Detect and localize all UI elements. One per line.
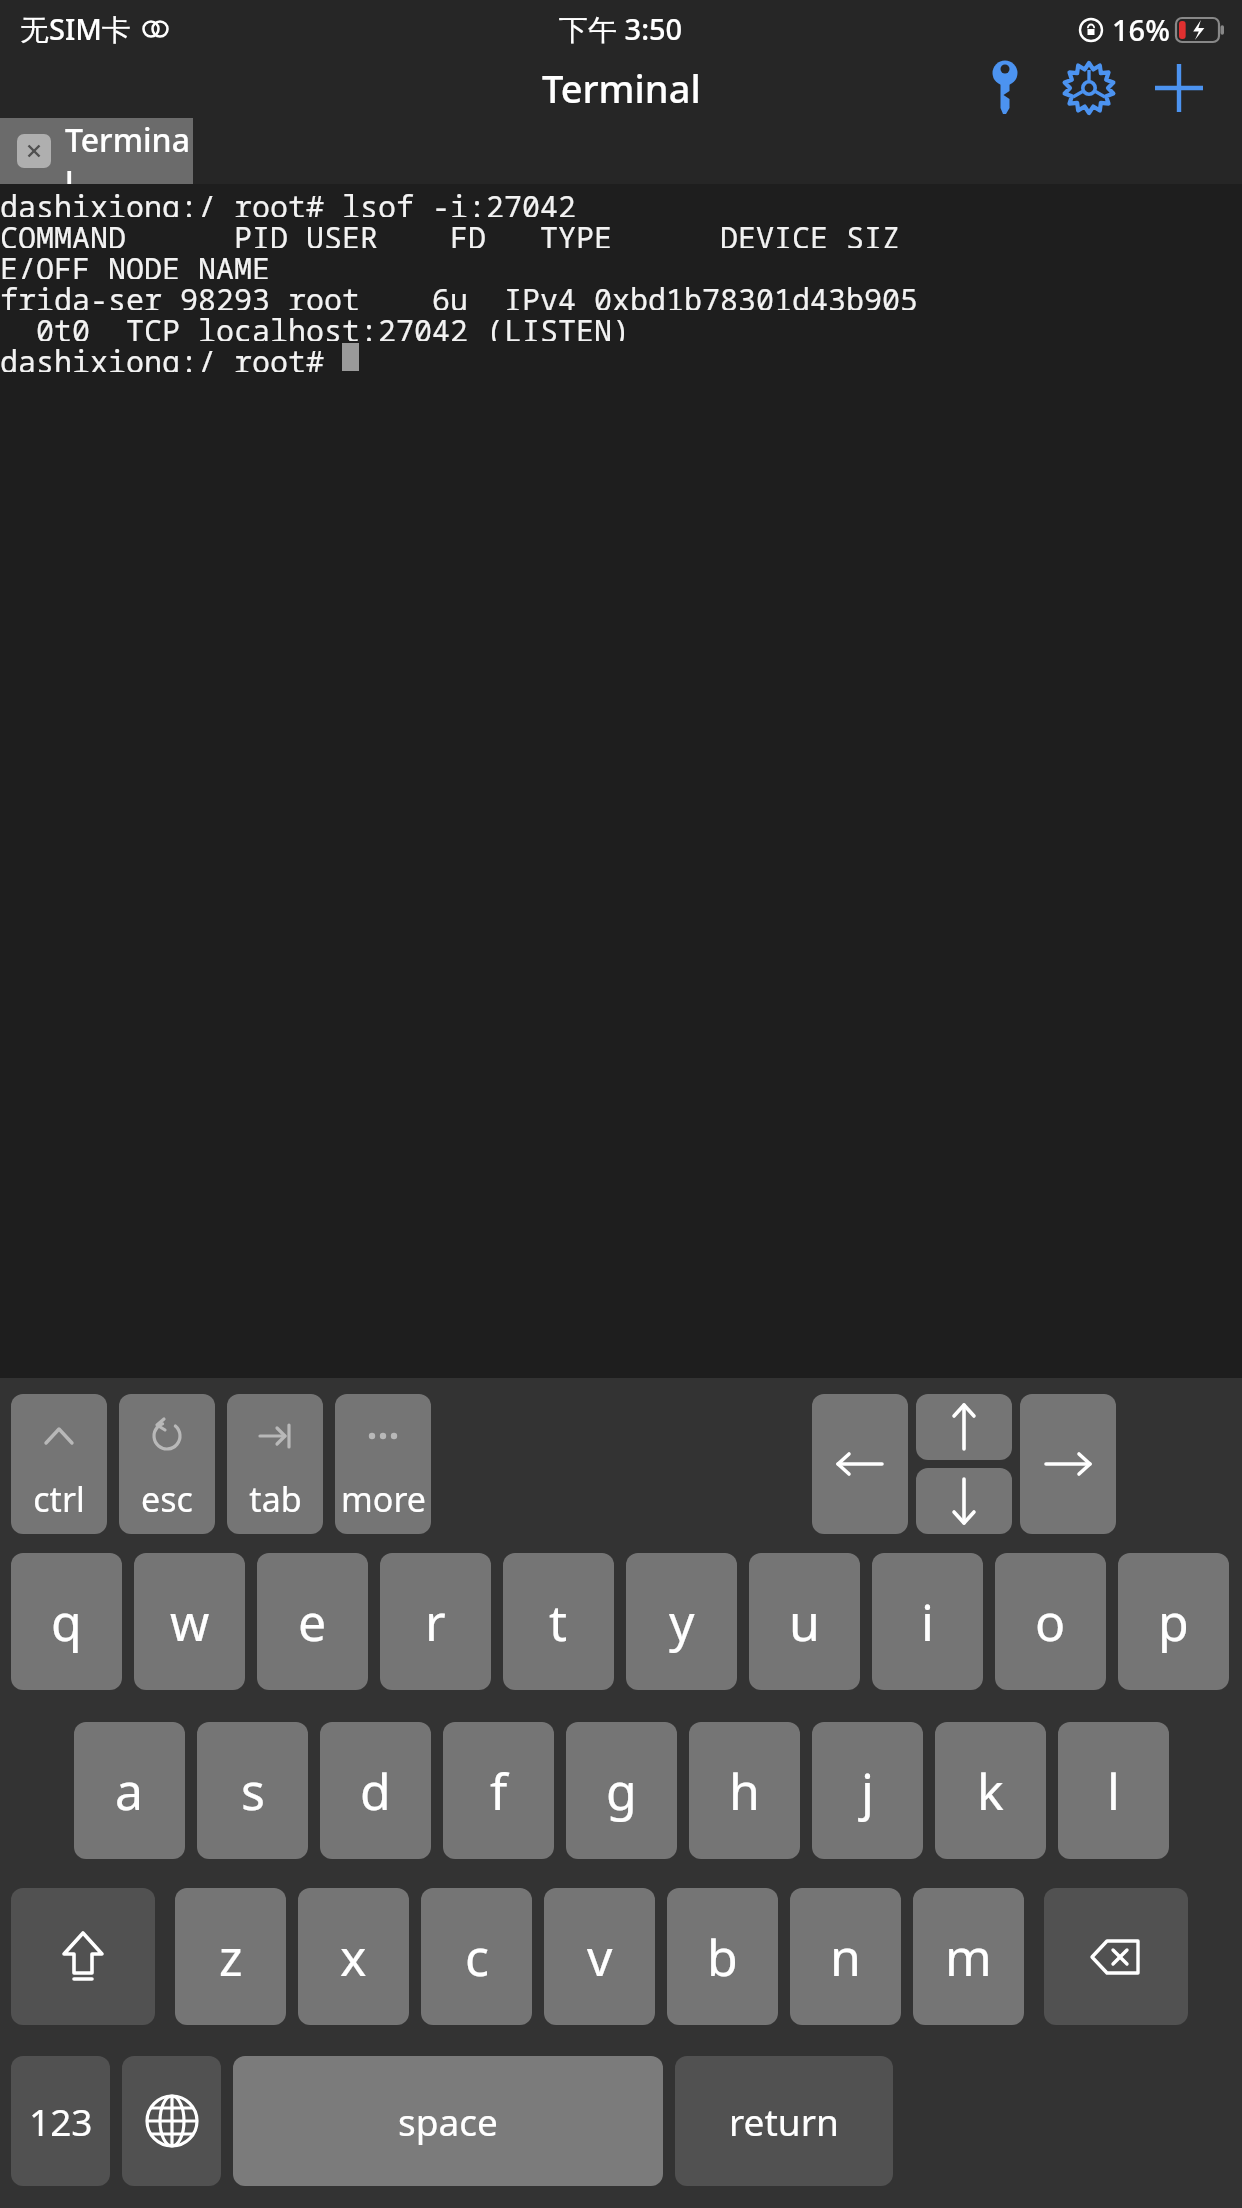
- staticText: dashixiong:/ root# lsof -i:27042: [0, 186, 576, 217]
- button[interactable]: t: [503, 1553, 614, 1690]
- button[interactable]: r: [380, 1553, 491, 1690]
- staticText: c: [465, 1923, 489, 1991]
- button[interactable]: l: [1058, 1722, 1169, 1859]
- button[interactable]: c: [421, 1888, 532, 2025]
- staticText: return: [729, 2096, 839, 2146]
- button[interactable]: Up: [916, 1394, 1012, 1460]
- button[interactable]: d: [320, 1722, 431, 1859]
- button[interactable]: a: [74, 1722, 185, 1859]
- button[interactable]: i: [872, 1553, 983, 1690]
- staticText: Terminal: [542, 62, 701, 114]
- staticText: E/OFF NODE NAME: [0, 248, 270, 279]
- button[interactable]: m: [913, 1888, 1024, 2025]
- staticText: 下午 3:50: [559, 9, 683, 49]
- button[interactable]: w: [134, 1553, 245, 1690]
- staticText: k: [977, 1757, 1004, 1825]
- staticText: i: [921, 1588, 934, 1656]
- staticText: esc: [141, 1476, 193, 1522]
- button[interactable]: z: [175, 1888, 286, 2025]
- button[interactable]: esc: [119, 1394, 215, 1534]
- staticText: COMMAND PID USER FD TYPE DEVICE SIZ: [0, 217, 900, 248]
- button[interactable]: f: [443, 1722, 554, 1859]
- staticText: space: [398, 2096, 498, 2146]
- button[interactable]: x: [298, 1888, 409, 2025]
- staticText: g: [606, 1757, 637, 1825]
- staticText: j: [861, 1757, 874, 1825]
- button[interactable]: tab: [227, 1394, 323, 1534]
- staticText: a: [115, 1757, 144, 1825]
- button[interactable]: New tab: [1140, 58, 1218, 118]
- button[interactable]: p: [1118, 1553, 1229, 1690]
- staticText: o: [1035, 1588, 1066, 1656]
- staticText: 无SIM卡: [20, 9, 131, 49]
- staticText: d: [360, 1757, 391, 1825]
- staticText: t: [549, 1588, 568, 1656]
- button[interactable]: k: [935, 1722, 1046, 1859]
- button[interactable]: Keys: [968, 58, 1042, 118]
- staticText: h: [729, 1757, 760, 1825]
- staticText: dashixiong:/ root#: [0, 341, 342, 372]
- button[interactable]: ctrl: [11, 1394, 107, 1534]
- button[interactable]: g: [566, 1722, 677, 1859]
- button[interactable]: Close tab: [0, 118, 193, 184]
- button[interactable]: return: [675, 2056, 893, 2186]
- button[interactable]: space: [233, 2056, 663, 2186]
- button[interactable]: n: [790, 1888, 901, 2025]
- button[interactable]: q: [11, 1553, 122, 1690]
- staticText: Terminal: [65, 118, 193, 184]
- staticText: 0t0 TCP localhost:27042 (LISTEN): [0, 310, 630, 341]
- staticText: more: [341, 1476, 426, 1522]
- button[interactable]: s: [197, 1722, 308, 1859]
- staticText: p: [1158, 1588, 1189, 1656]
- button[interactable]: Down: [916, 1468, 1012, 1534]
- staticText: r: [425, 1588, 446, 1656]
- staticText: 123: [29, 2096, 93, 2146]
- staticText: tab: [249, 1476, 302, 1522]
- button[interactable]: Close tab: [17, 134, 51, 168]
- staticText: y: [669, 1588, 695, 1656]
- button[interactable]: Left: [812, 1394, 908, 1534]
- staticText: m: [945, 1923, 992, 1991]
- button[interactable]: Right: [1020, 1394, 1116, 1534]
- staticText: u: [789, 1588, 820, 1656]
- button[interactable]: o: [995, 1553, 1106, 1690]
- staticText: n: [830, 1923, 861, 1991]
- button[interactable]: more: [335, 1394, 431, 1534]
- button[interactable]: Backspace: [1044, 1888, 1188, 2025]
- button[interactable]: 123: [11, 2056, 110, 2186]
- staticText: w: [170, 1588, 210, 1656]
- staticText: x: [340, 1923, 367, 1991]
- button[interactable]: b: [667, 1888, 778, 2025]
- button[interactable]: Change keyboard: [122, 2056, 221, 2186]
- staticText: v: [587, 1923, 613, 1991]
- staticText: 16%: [1112, 10, 1170, 49]
- staticText: q: [51, 1588, 82, 1656]
- button[interactable]: v: [544, 1888, 655, 2025]
- staticText: l: [1107, 1757, 1120, 1825]
- button[interactable]: e: [257, 1553, 368, 1690]
- button[interactable]: h: [689, 1722, 800, 1859]
- button[interactable]: j: [812, 1722, 923, 1859]
- staticText: b: [707, 1923, 738, 1991]
- staticText: s: [241, 1757, 265, 1825]
- button[interactable]: Shift: [11, 1888, 155, 2025]
- staticText: z: [219, 1923, 243, 1991]
- button[interactable]: Settings: [1050, 58, 1128, 118]
- button[interactable]: u: [749, 1553, 860, 1690]
- staticText: frida-ser 98293 root 6u IPv4 0xbd1b78301…: [0, 279, 918, 310]
- staticText: f: [490, 1757, 508, 1825]
- staticText: e: [298, 1588, 327, 1656]
- button[interactable]: y: [626, 1553, 737, 1690]
- staticText: ctrl: [33, 1476, 85, 1522]
